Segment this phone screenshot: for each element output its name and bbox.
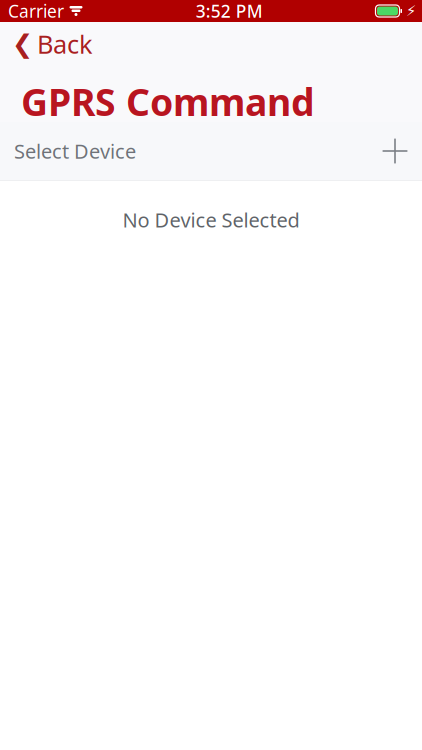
staticText: Carrier (8, 0, 64, 22)
staticText: GPRS Command (21, 77, 315, 126)
button[interactable]: Add Device (368, 124, 422, 178)
staticText: No Device Selected (122, 206, 299, 233)
staticText: Select Device (14, 138, 136, 164)
button[interactable]: ❮ (0, 17, 107, 67)
staticText: 3:52 PM (196, 0, 263, 22)
staticText: ⚡︎ (406, 3, 416, 19)
staticText: ❮ (12, 30, 33, 58)
staticText: Back (37, 27, 93, 61)
